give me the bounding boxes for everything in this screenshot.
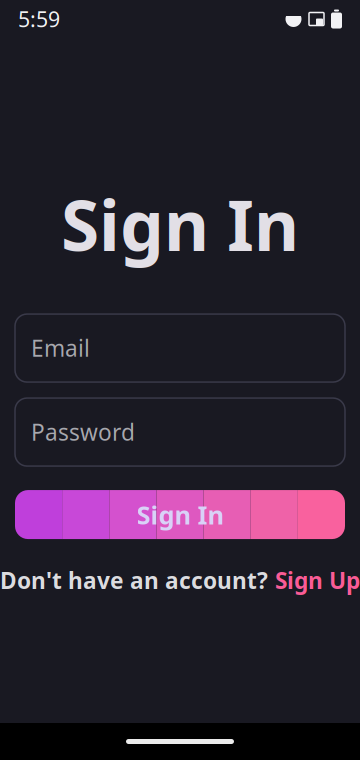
button[interactable]: Sign In	[15, 490, 345, 539]
staticText: Don't have an account?	[0, 565, 268, 595]
button[interactable]: Sign Up	[275, 565, 360, 595]
staticText: Sign In	[61, 178, 299, 270]
button[interactable]: Password	[15, 398, 345, 466]
staticText: Email	[31, 333, 90, 363]
staticText: 5:59	[18, 5, 60, 33]
staticText: Sign Up	[275, 565, 360, 595]
staticText: Sign In	[136, 498, 223, 531]
staticText: Password	[31, 417, 135, 447]
button[interactable]: Email	[15, 314, 345, 382]
